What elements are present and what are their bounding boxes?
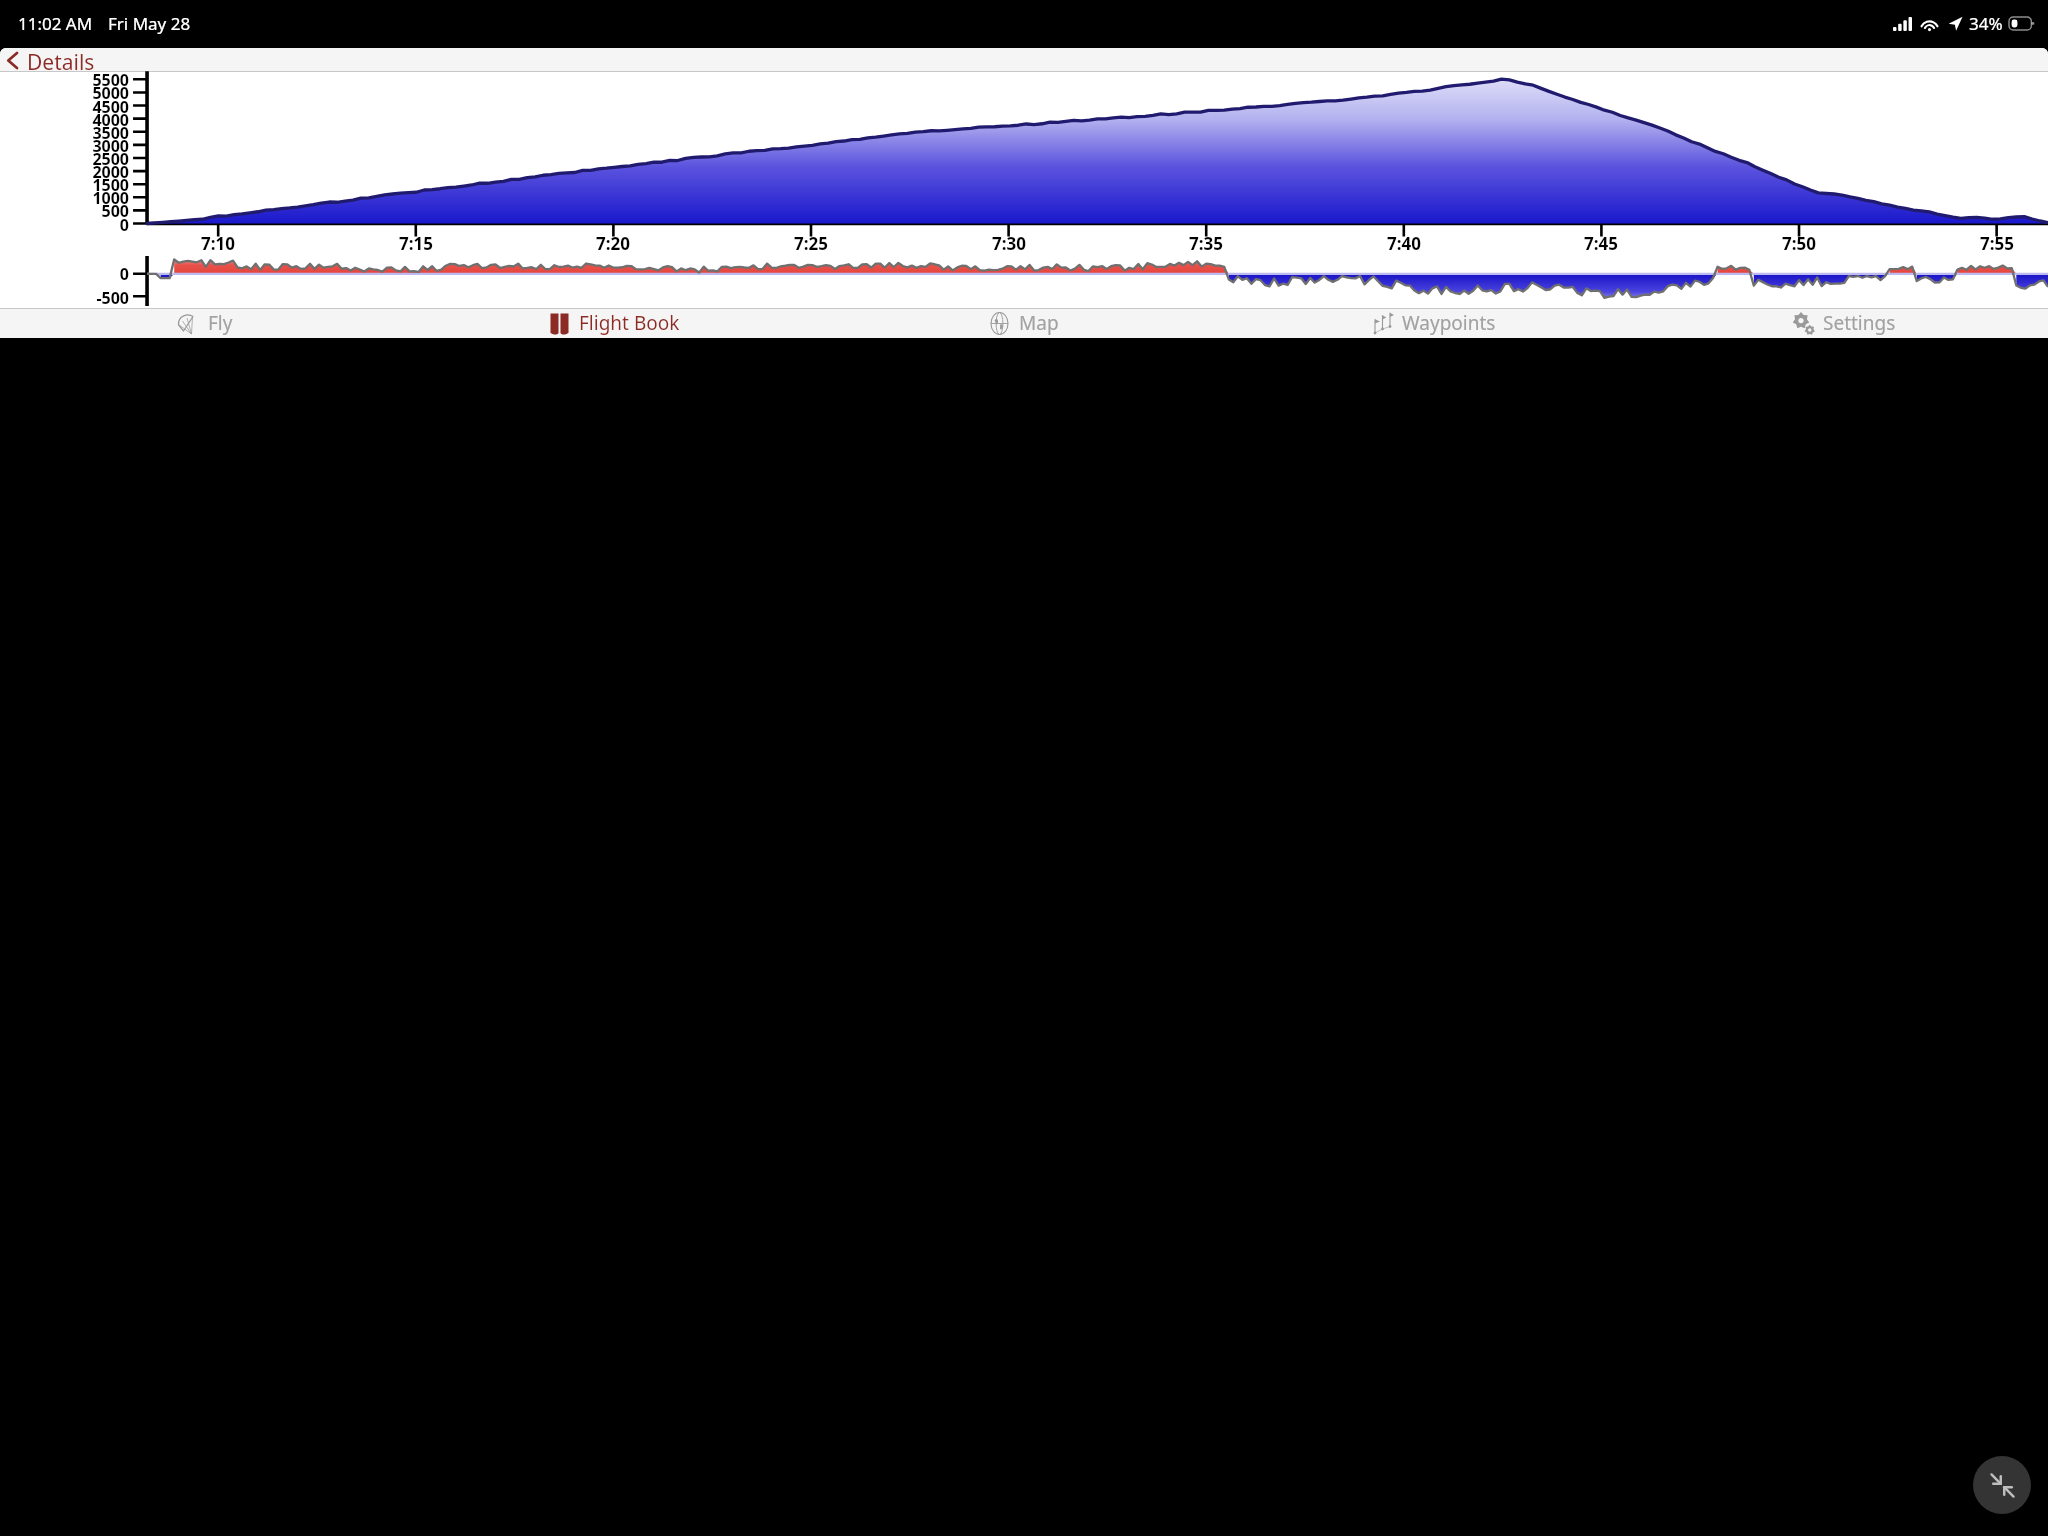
staticText: 5500 xyxy=(67,69,129,91)
button[interactable]: Settings xyxy=(1638,310,2048,336)
staticText: Fri May 28 xyxy=(108,12,191,35)
staticText: 3000 xyxy=(67,135,129,157)
staticText: 0 xyxy=(67,263,129,285)
staticText: 7:55 xyxy=(1965,232,2029,255)
staticText: 7:35 xyxy=(1174,232,1238,255)
staticText: 0 xyxy=(67,214,129,236)
staticText: 7:50 xyxy=(1767,232,1831,255)
button[interactable]: Back xyxy=(5,48,95,72)
staticText: 500 xyxy=(67,200,129,222)
staticText: -500 xyxy=(67,287,129,309)
staticText: 1000 xyxy=(67,187,129,209)
staticText: 4000 xyxy=(67,109,129,131)
staticText: Map xyxy=(1019,310,1059,336)
other: Back xyxy=(5,51,20,70)
button[interactable]: Fly xyxy=(0,310,409,336)
staticText: 7:40 xyxy=(1372,232,1436,255)
button[interactable]: Waypoints xyxy=(1228,310,1638,336)
staticText: Details xyxy=(27,48,95,72)
staticText: 7:45 xyxy=(1569,232,1633,255)
staticText: 2000 xyxy=(67,161,129,183)
staticText: 7:10 xyxy=(186,232,250,255)
staticText: Settings xyxy=(1823,310,1896,336)
staticText: 2500 xyxy=(67,148,129,170)
staticText: 11:02 AM xyxy=(18,12,93,35)
button[interactable]: Exit full screen xyxy=(1973,1456,2031,1514)
button[interactable]: Map xyxy=(818,310,1228,336)
staticText: Waypoints xyxy=(1402,310,1496,336)
staticText: 4500 xyxy=(67,96,129,118)
staticText: 3500 xyxy=(67,122,129,144)
staticText: 7:20 xyxy=(581,232,645,255)
staticText: 1500 xyxy=(67,174,129,196)
staticText: Fly xyxy=(208,310,233,336)
staticText: Flight Book xyxy=(579,310,680,336)
staticText: 5000 xyxy=(67,82,129,104)
button[interactable]: Flight Book xyxy=(409,310,818,336)
staticText: 34% xyxy=(1969,12,2003,35)
staticText: 7:30 xyxy=(977,232,1041,255)
staticText: 7:25 xyxy=(779,232,843,255)
staticText: 7:15 xyxy=(384,232,448,255)
